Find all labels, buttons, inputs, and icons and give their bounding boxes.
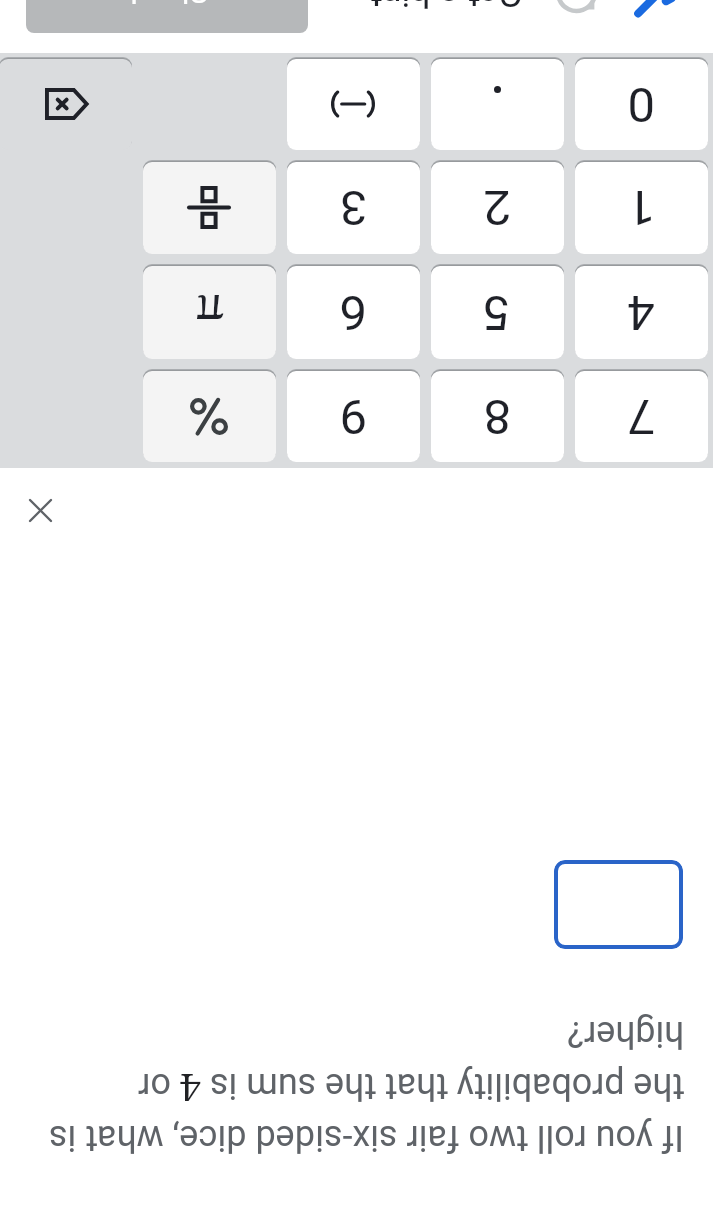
staticText: 3	[339, 179, 367, 236]
button[interactable]: 3	[287, 162, 420, 254]
button[interactable]: 1	[575, 162, 708, 254]
staticText: 1	[627, 179, 655, 236]
button[interactable]: 8	[431, 371, 564, 462]
button[interactable]: Close keyboard	[13, 483, 69, 539]
button[interactable]: decimal point	[431, 59, 564, 150]
button[interactable]: Backspace	[0, 59, 132, 150]
staticText: 7	[627, 388, 655, 445]
staticText: 9	[339, 388, 367, 445]
button[interactable]: Check	[26, 0, 308, 33]
staticText: 8	[483, 388, 511, 445]
button[interactable]: divide	[143, 162, 276, 254]
staticText: π	[195, 282, 224, 342]
button[interactable]: pi	[143, 266, 276, 359]
staticText: 2	[483, 179, 511, 236]
staticText: 6	[339, 284, 367, 341]
button[interactable]: 4	[575, 266, 708, 359]
button[interactable]: percent	[143, 371, 276, 462]
staticText: If you roll two fair six-sided dice, wha…	[24, 1013, 684, 1159]
button[interactable]: 0	[575, 59, 708, 150]
button[interactable]: Hint	[605, 0, 701, 48]
button[interactable]: 5	[431, 266, 564, 359]
staticText: 0	[627, 76, 655, 133]
staticText: Check	[121, 0, 210, 11]
button[interactable]: negative	[287, 59, 420, 150]
button[interactable]: Answer field	[554, 860, 683, 949]
staticText: Get a hint	[369, 0, 523, 14]
button[interactable]: 9	[287, 371, 420, 462]
button[interactable]: 2	[431, 162, 564, 254]
button[interactable]: 6	[287, 266, 420, 359]
staticText: 4	[627, 284, 655, 341]
button[interactable]: 7	[575, 371, 708, 462]
button[interactable]: Undo	[539, 0, 615, 30]
staticText: 5	[483, 284, 511, 341]
